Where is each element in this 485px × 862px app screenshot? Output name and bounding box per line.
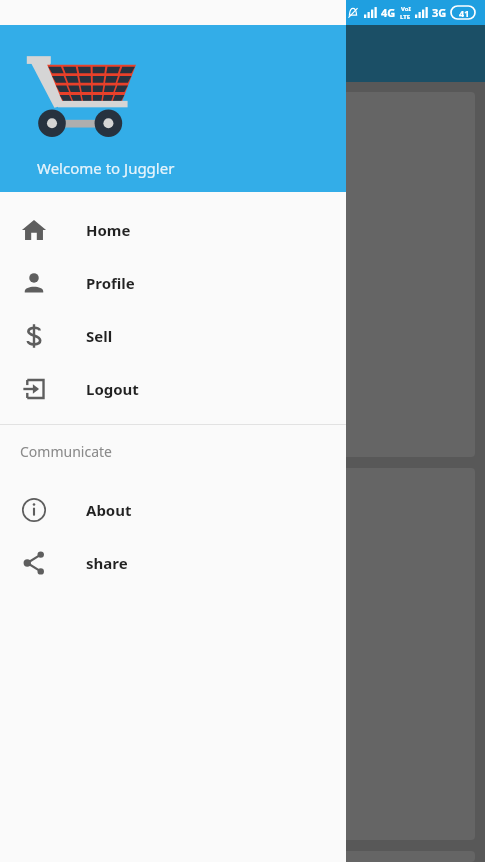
staticText: 4G: [381, 5, 396, 20]
staticText: Profile: [86, 273, 135, 293]
staticText: LTE: [400, 13, 411, 21]
staticText: Communicate: [20, 442, 112, 461]
staticText: 41: [459, 7, 470, 19]
staticText: VoI: [401, 5, 411, 13]
staticText: Sell: [86, 326, 113, 346]
staticText: About: [86, 500, 132, 520]
staticText: Welcome to Juggler: [37, 158, 175, 178]
staticText: Logout: [86, 379, 139, 399]
staticText: Home: [86, 220, 131, 240]
button[interactable]: Home: [0, 203, 346, 256]
button[interactable]: Profile: [0, 256, 346, 309]
staticText: 3G: [432, 5, 447, 20]
button[interactable]: Logout: [0, 362, 346, 415]
button[interactable]: share: [0, 536, 346, 589]
staticText: share: [86, 553, 128, 573]
staticText: analysis: [20, 108, 84, 131]
button[interactable]: Sell: [0, 309, 346, 362]
button[interactable]: About: [0, 483, 346, 536]
